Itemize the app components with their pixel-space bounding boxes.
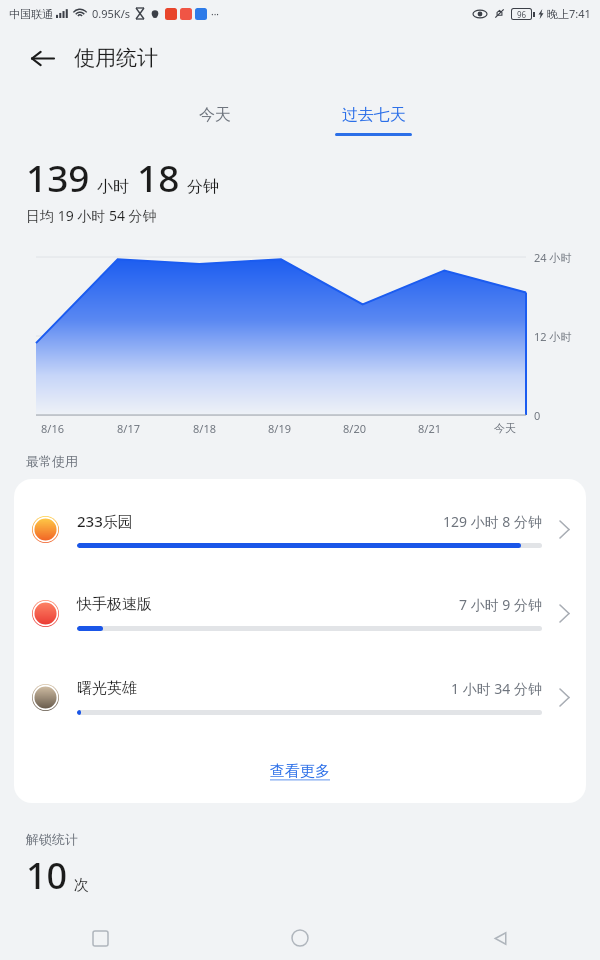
staticText: 7 小时 9 分钟 [459, 595, 542, 614]
staticText: 1 小时 34 分钟 [451, 679, 542, 698]
button[interactable]: Recents [0, 916, 200, 960]
button[interactable]: 快手极速版 [14, 571, 586, 655]
staticText: 8/17 [117, 421, 140, 436]
staticText: 12 小时 [534, 329, 572, 344]
button[interactable]: Home [200, 916, 400, 960]
staticText: 今天 [494, 421, 516, 435]
staticText: 使用统计 [74, 45, 158, 71]
staticText: 8/21 [418, 421, 441, 436]
staticText: 18 [137, 152, 180, 202]
staticText: 8/19 [268, 421, 291, 436]
staticText: 查看更多 [270, 762, 330, 781]
staticText: 曙光英雄 [77, 679, 137, 698]
staticText: ··· [211, 7, 220, 21]
staticText: 最常使用 [26, 453, 78, 469]
staticText: 0 [534, 408, 541, 423]
staticText: 8/18 [193, 421, 216, 436]
staticText: 10 [26, 851, 68, 900]
staticText: 中国联通 [9, 7, 53, 21]
staticText: 0.95K/s [92, 6, 130, 21]
staticText: 129 小时 8 分钟 [443, 512, 542, 531]
staticText: 小时 [97, 177, 129, 197]
button[interactable]: 今天 [183, 100, 247, 130]
staticText: 233乐园 [77, 511, 133, 531]
button[interactable]: 曙光英雄 [14, 655, 586, 739]
staticText: 分钟 [187, 177, 219, 197]
staticText: 8/16 [41, 421, 64, 436]
button[interactable]: Back [20, 36, 64, 80]
staticText: 解锁统计 [26, 831, 78, 847]
staticText: 快手极速版 [77, 595, 152, 614]
staticText: 晚上7:41 [547, 6, 591, 21]
staticText: 24 小时 [534, 250, 572, 265]
staticText: 8/20 [343, 421, 366, 436]
button[interactable]: 233乐园 [14, 487, 586, 571]
staticText: 过去七天 [342, 105, 406, 125]
staticText: 139 [26, 152, 90, 202]
staticText: 日均 19 小时 54 分钟 [26, 206, 157, 225]
button[interactable]: 查看更多 [14, 739, 586, 803]
staticText: 今天 [199, 105, 231, 125]
button[interactable]: 过去七天 [329, 100, 418, 136]
staticText: 次 [74, 876, 89, 895]
staticText: 96 [517, 9, 527, 19]
button[interactable]: Back [400, 916, 600, 960]
